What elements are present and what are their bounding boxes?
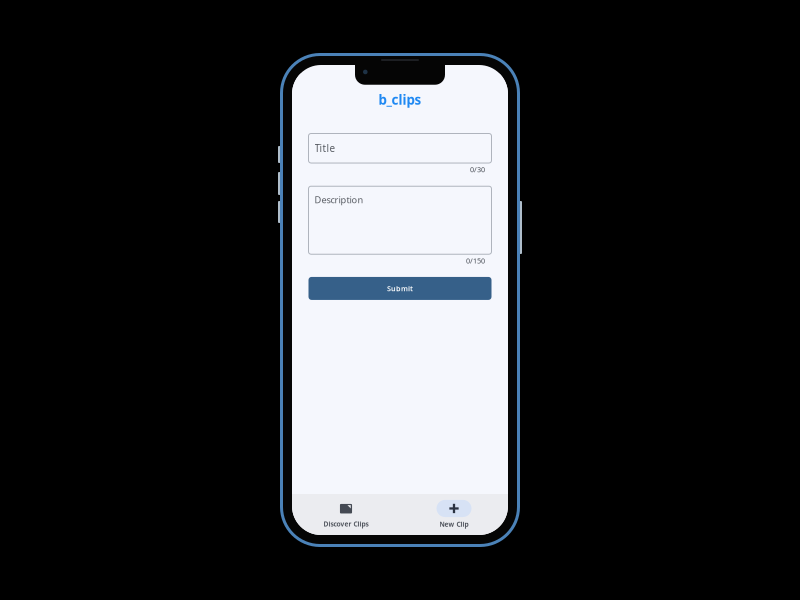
staticText: Description [314,193,363,206]
button[interactable]: Description [308,186,491,254]
button[interactable]: Title [308,133,491,163]
staticText: New Clip [439,520,468,529]
staticText: Title [314,141,335,155]
staticText: Submit [387,283,413,293]
staticText: 0/150 [466,256,485,265]
button[interactable]: New Clip [400,494,508,535]
button[interactable]: Discover Clips [292,494,400,535]
staticText: b_clips [378,90,421,109]
staticText: Discover Clips [323,519,368,529]
staticText: 0/30 [470,164,485,174]
button[interactable]: Submit [308,277,491,300]
